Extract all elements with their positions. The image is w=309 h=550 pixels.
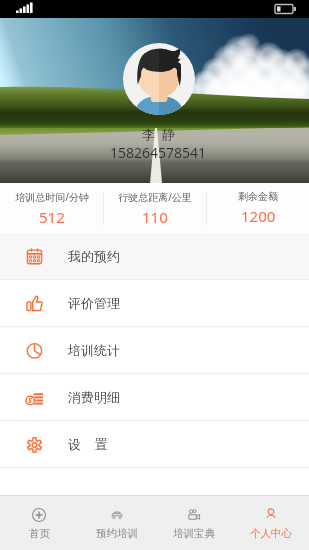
staticText: 李 静 (142, 125, 175, 143)
button[interactable]: 剩余金额 (207, 183, 309, 233)
button[interactable]: 头像 (123, 43, 195, 115)
staticText: 剩余金额 (238, 190, 278, 203)
staticText: 158264578541 (110, 143, 207, 162)
button[interactable]: 培训统计 (0, 327, 309, 373)
staticText: 培训宝典 (173, 527, 215, 540)
button[interactable]: 预约培训 (78, 496, 155, 550)
staticText: 设 置 (68, 435, 108, 453)
staticText: 消费明细 (68, 389, 120, 405)
staticText: 我的预约 (68, 248, 120, 264)
staticText: 评价管理 (68, 295, 120, 311)
button[interactable]: 培训总时间/分钟 (0, 183, 103, 233)
staticText: 预约培训 (96, 527, 138, 540)
button[interactable]: 首页 (0, 496, 78, 550)
staticText: 首页 (29, 527, 50, 540)
staticText: 个人中心 (250, 527, 292, 540)
staticText: 培训统计 (68, 342, 120, 358)
button[interactable]: 消费明细 (0, 374, 309, 420)
button[interactable]: 设 置 (0, 421, 309, 467)
button[interactable]: 我的预约 (0, 233, 309, 279)
staticText: 110 (142, 207, 168, 227)
staticText: 培训总时间/分钟 (15, 190, 89, 204)
staticText: 行驶总距离/公里 (118, 190, 192, 204)
button[interactable]: 评价管理 (0, 280, 309, 326)
staticText: 1200 (241, 206, 276, 226)
button[interactable]: 个人中心 (232, 496, 309, 550)
button[interactable]: 行驶总距离/公里 (104, 183, 206, 233)
button[interactable]: 培训宝典 (155, 496, 232, 550)
staticText: 512 (39, 207, 65, 227)
